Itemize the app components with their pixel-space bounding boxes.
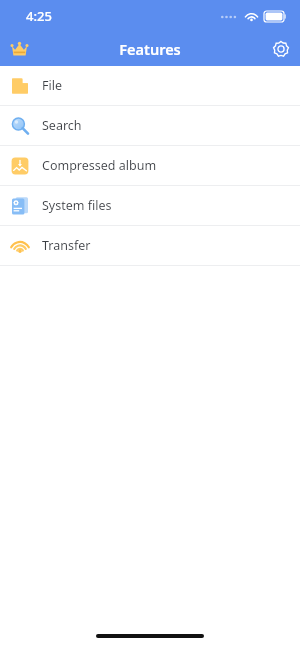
button[interactable]: File (0, 66, 300, 105)
staticText: File (42, 77, 62, 94)
button[interactable]: Premium (0, 32, 38, 66)
staticText: 4:25 (26, 7, 52, 25)
staticText: Features (119, 39, 181, 59)
button[interactable]: Search (0, 106, 300, 145)
staticText: Compressed album (42, 157, 157, 174)
button[interactable]: System files (0, 186, 300, 225)
staticText: Transfer (42, 237, 91, 254)
staticText: Search (42, 117, 82, 134)
button[interactable]: Transfer (0, 226, 300, 265)
button[interactable]: Compressed album (0, 146, 300, 185)
staticText: System files (42, 197, 112, 214)
button[interactable]: Settings (262, 32, 300, 66)
